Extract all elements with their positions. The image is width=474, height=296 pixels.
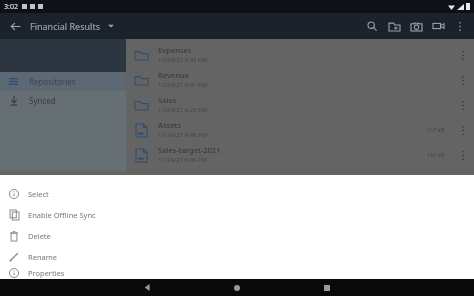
staticText: Rename [28, 252, 57, 262]
button[interactable]: Rename [0, 246, 474, 267]
staticText: Repositories [29, 76, 76, 87]
staticText: 317 kB [427, 126, 445, 133]
button[interactable]: Back [102, 279, 192, 296]
staticText: 11/24/21 6:49 PM [158, 156, 208, 164]
button[interactable]: More options [455, 47, 471, 63]
button[interactable]: Record video [427, 15, 449, 37]
button[interactable]: Assets [126, 117, 474, 142]
button[interactable]: Enable Offline Sync [0, 204, 474, 225]
button[interactable]: More options [455, 147, 471, 163]
button[interactable]: Sales-target-2021 [126, 142, 474, 167]
staticText: Sales [158, 95, 177, 105]
button[interactable]: More options [449, 15, 471, 37]
staticText: 3:02 [4, 2, 18, 12]
button[interactable]: More options [455, 97, 471, 113]
button[interactable]: Take photo [405, 15, 427, 37]
button[interactable]: More options [455, 122, 471, 138]
button[interactable]: Recents [282, 279, 372, 296]
button[interactable]: Financial Results [30, 20, 114, 32]
button[interactable]: Expenses [126, 42, 474, 67]
button[interactable]: More options [455, 72, 471, 88]
staticText: 166 kB [427, 151, 445, 158]
button[interactable]: Sales [126, 92, 474, 117]
button[interactable]: Select [0, 183, 474, 204]
staticText: Sales-target-2021 [158, 145, 221, 155]
button[interactable]: Properties [0, 267, 474, 279]
staticText: 11/24/21 6:48 PM [158, 131, 208, 139]
button[interactable]: Home [192, 279, 282, 296]
staticText: Financial Results [30, 20, 100, 32]
button[interactable]: Back [4, 15, 26, 37]
button[interactable]: Synced [0, 91, 126, 110]
staticText: 11/24/21 6:43 PM [158, 56, 208, 64]
staticText: Delete [28, 231, 51, 241]
staticText: 11/24/21 6:25 PM [158, 106, 208, 114]
staticText: Enable Offline Sync [28, 210, 96, 220]
staticText: Assets [158, 120, 182, 130]
staticText: Revenue [158, 70, 189, 80]
staticText: Properties [28, 268, 65, 278]
staticText: 11/24/21 6:41 PM [158, 81, 208, 89]
button[interactable]: Delete [0, 225, 474, 246]
staticText: Expenses [158, 45, 192, 55]
button[interactable]: Revenue [126, 67, 474, 92]
button[interactable]: Repositories [0, 72, 126, 91]
button[interactable]: New folder [383, 15, 405, 37]
button[interactable]: Search [361, 15, 383, 37]
staticText: Synced [29, 95, 56, 106]
staticText: Select [28, 189, 49, 199]
